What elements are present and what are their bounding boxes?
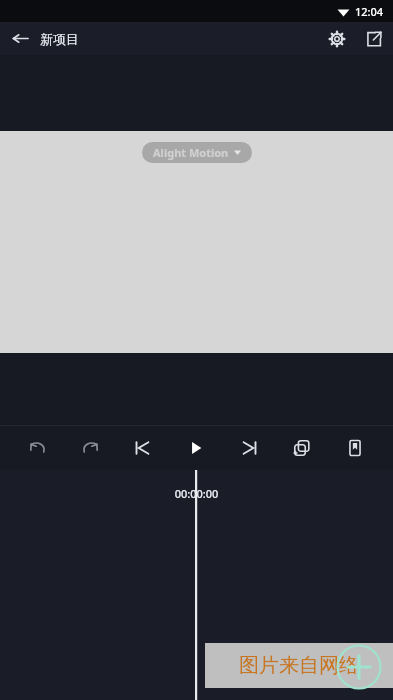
button[interactable]: Settings <box>319 22 355 55</box>
staticText: 图片来自网络 <box>239 653 359 678</box>
button[interactable]: Play <box>169 425 222 470</box>
button[interactable]: Alight Motion <box>142 142 252 163</box>
staticText: Alight Motion <box>153 145 229 160</box>
button[interactable]: Add <box>326 634 392 700</box>
staticText: 12:04 <box>355 4 384 19</box>
staticText: 新项目 <box>40 31 319 47</box>
button[interactable]: Back <box>0 22 40 55</box>
button[interactable]: Skip to start <box>116 425 169 470</box>
button[interactable]: Redo <box>64 425 116 470</box>
button[interactable]: Skip to end <box>222 425 275 470</box>
button[interactable]: Loop <box>275 425 328 470</box>
staticText: 00:00:00 <box>0 486 393 501</box>
button[interactable]: Undo <box>12 425 64 470</box>
button[interactable]: Bookmark <box>328 425 381 470</box>
button[interactable]: Export <box>355 22 393 55</box>
